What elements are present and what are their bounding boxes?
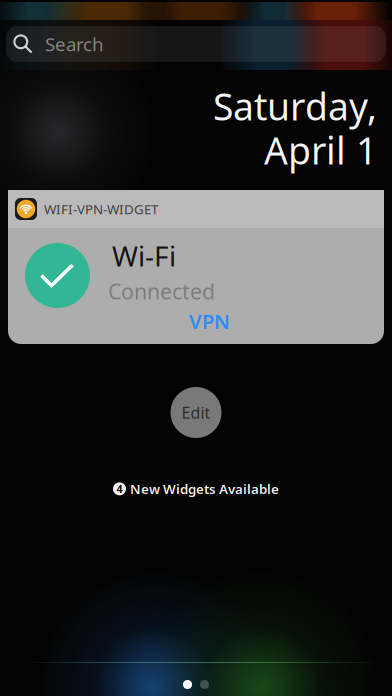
staticText: Search <box>45 32 104 56</box>
staticText: Saturday, <box>213 81 377 131</box>
staticText: New Widgets Available <box>130 480 279 498</box>
button[interactable]: Edit <box>170 387 221 438</box>
staticText: Connected <box>108 277 215 305</box>
button[interactable]: VPN <box>189 308 230 335</box>
staticText: April 1 <box>264 125 377 175</box>
staticText: Wi-Fi <box>112 237 176 274</box>
button[interactable]: Search <box>6 26 386 62</box>
staticText: Edit <box>181 402 210 423</box>
staticText: 4 <box>116 482 122 496</box>
staticText: WIFI-VPN-WIDGET <box>44 200 158 218</box>
staticText: VPN <box>189 308 230 335</box>
